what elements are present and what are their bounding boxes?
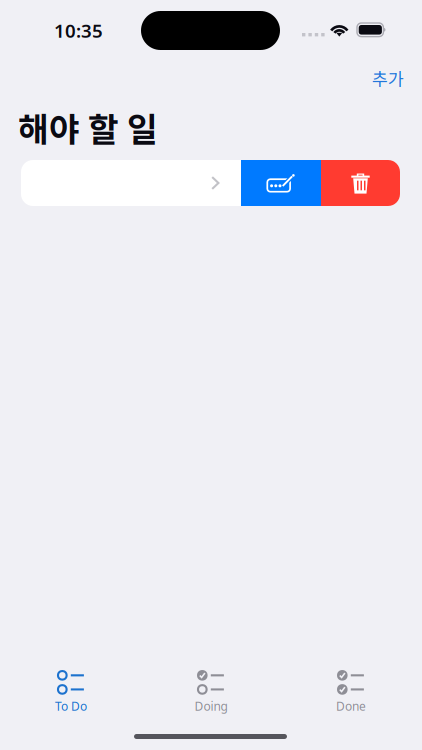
button[interactable]: To Do: [1, 669, 141, 715]
button[interactable]: Doing: [141, 669, 281, 715]
button[interactable]: Done: [281, 669, 421, 715]
staticText: Doing: [194, 698, 227, 714]
button[interactable]: Edit: [241, 160, 321, 206]
button[interactable]: [21, 160, 241, 206]
staticText: To Do: [55, 698, 87, 714]
button[interactable]: Delete: [321, 160, 400, 206]
button[interactable]: 추가: [357, 58, 419, 99]
staticText: 추가: [372, 66, 404, 91]
staticText: 해야 할 일: [18, 103, 158, 151]
staticText: 10:35: [54, 18, 103, 43]
staticText: Done: [336, 698, 366, 714]
